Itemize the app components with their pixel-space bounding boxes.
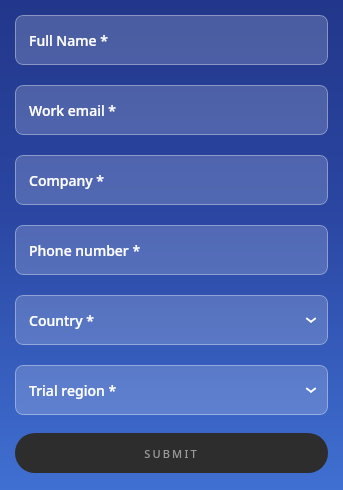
staticText: Full Name * <box>29 31 108 50</box>
button[interactable]: Trial region * <box>15 365 328 415</box>
button[interactable]: Submit <box>15 433 328 473</box>
button[interactable]: Country * <box>15 295 328 345</box>
staticText: SUBMIT <box>144 446 199 461</box>
staticText: Trial region * <box>29 381 117 400</box>
staticText: Company * <box>29 171 104 190</box>
staticText: Work email * <box>29 101 117 120</box>
staticText: Phone number * <box>29 241 141 260</box>
button[interactable]: Work email * <box>15 85 328 135</box>
button[interactable]: Phone number * <box>15 225 328 275</box>
staticText: Country * <box>29 311 94 330</box>
button[interactable]: Full Name * <box>15 15 328 65</box>
button[interactable]: Company * <box>15 155 328 205</box>
